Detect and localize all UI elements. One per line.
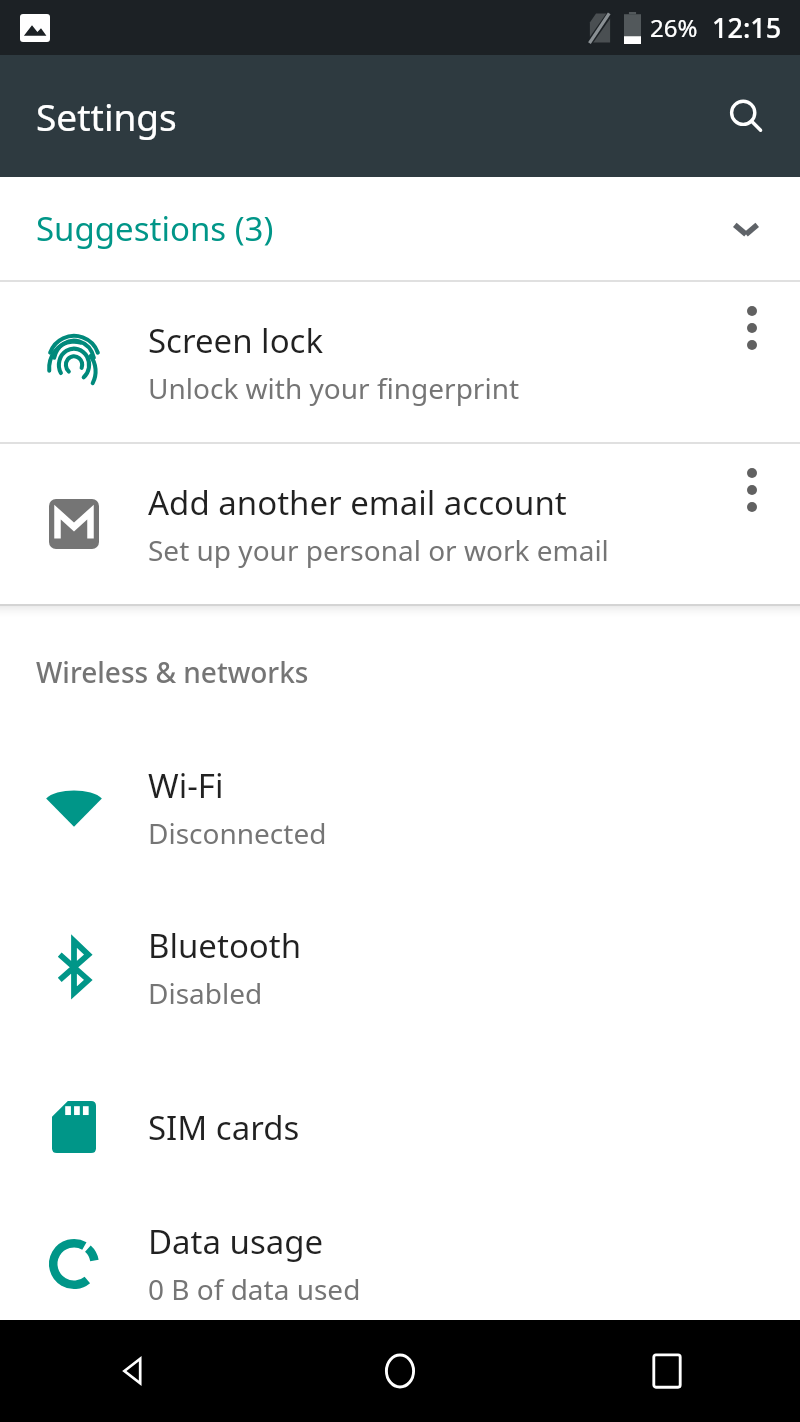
button[interactable]: SIM cards	[0, 1047, 800, 1207]
staticText: Set up your personal or work email	[148, 531, 609, 569]
staticText: SIM cards	[148, 1105, 300, 1150]
button[interactable]: Search	[714, 84, 778, 148]
staticText: 0 B of data used	[148, 1270, 361, 1308]
staticText: 26%	[650, 11, 698, 44]
button[interactable]: Suggestions (3)	[0, 177, 800, 280]
button[interactable]: Bluetooth	[0, 887, 800, 1047]
button[interactable]: More options	[704, 444, 800, 604]
staticText: Wi-Fi	[148, 763, 224, 808]
staticText: Unlock with your fingerprint	[148, 369, 520, 407]
staticText: Screen lock	[148, 318, 324, 363]
button[interactable]: Home	[266, 1320, 533, 1422]
staticText: Add another email account	[148, 480, 567, 525]
button[interactable]: Back	[0, 1320, 266, 1422]
staticText: Disabled	[148, 974, 263, 1012]
button[interactable]: Wi-Fi	[0, 727, 800, 887]
staticText: Wireless & networks	[36, 653, 309, 691]
staticText: Disconnected	[148, 814, 327, 852]
button[interactable]: Data usage	[0, 1207, 800, 1320]
staticText: Suggestions (3)	[36, 206, 274, 251]
button[interactable]: Recent apps	[533, 1320, 800, 1422]
button[interactable]: More options	[704, 282, 800, 442]
staticText: Data usage	[148, 1219, 324, 1264]
staticText: 12:15	[712, 9, 782, 46]
staticText: Settings	[36, 91, 177, 141]
button[interactable]: Add another email account	[0, 444, 800, 604]
button[interactable]: Screen lock	[0, 282, 800, 442]
staticText: Bluetooth	[148, 923, 302, 968]
